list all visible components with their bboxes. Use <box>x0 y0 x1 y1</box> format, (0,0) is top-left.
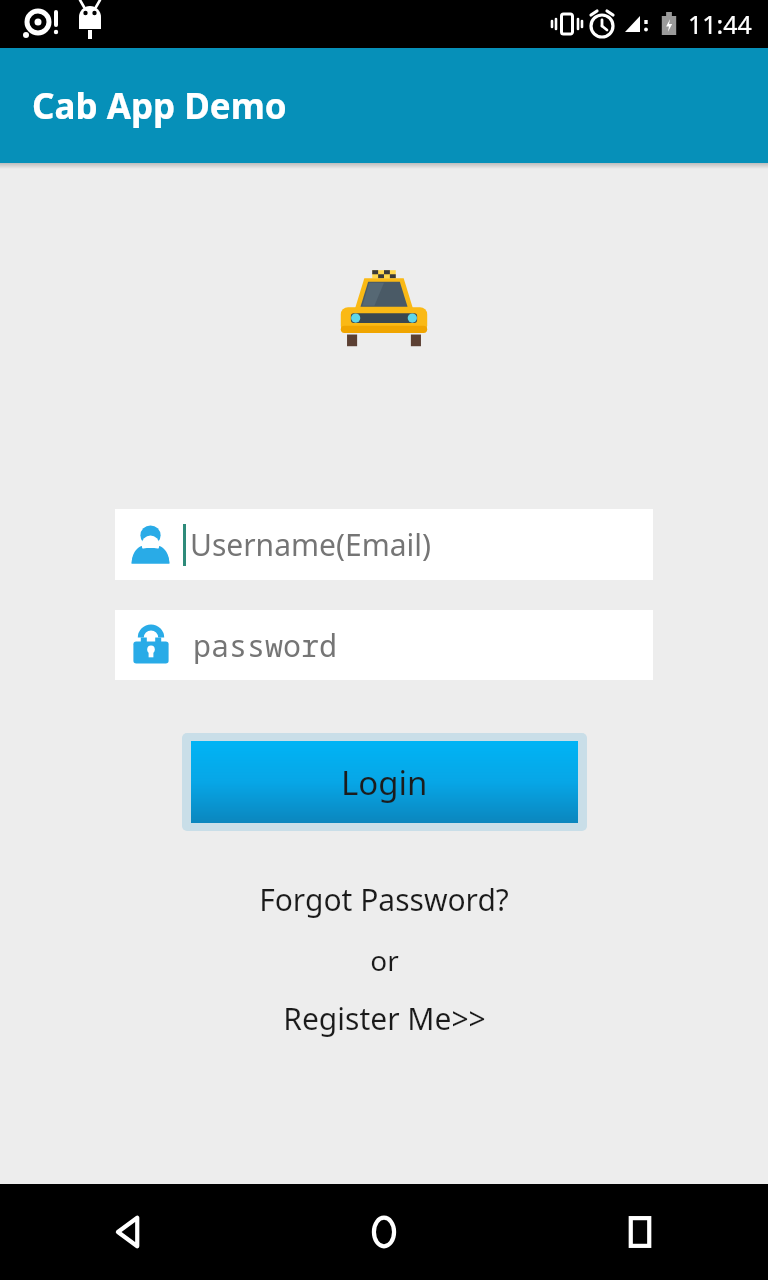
button[interactable]: password <box>115 610 653 680</box>
button[interactable]: Home <box>256 1184 512 1280</box>
staticText: Cab App Demo <box>32 82 287 130</box>
staticText: Login <box>341 760 428 805</box>
button[interactable]: Login <box>182 733 587 831</box>
button[interactable]: Username(Email) <box>115 509 653 580</box>
staticText: password <box>193 625 337 666</box>
button[interactable]: Forgot Password? <box>259 879 509 920</box>
staticText: Username(Email) <box>190 524 431 565</box>
staticText: 11:44 <box>688 7 752 41</box>
staticText: or <box>370 941 399 979</box>
button[interactable]: Register Me>> <box>283 998 486 1039</box>
button[interactable]: Recent apps <box>512 1184 768 1280</box>
button[interactable]: Back <box>0 1184 256 1280</box>
